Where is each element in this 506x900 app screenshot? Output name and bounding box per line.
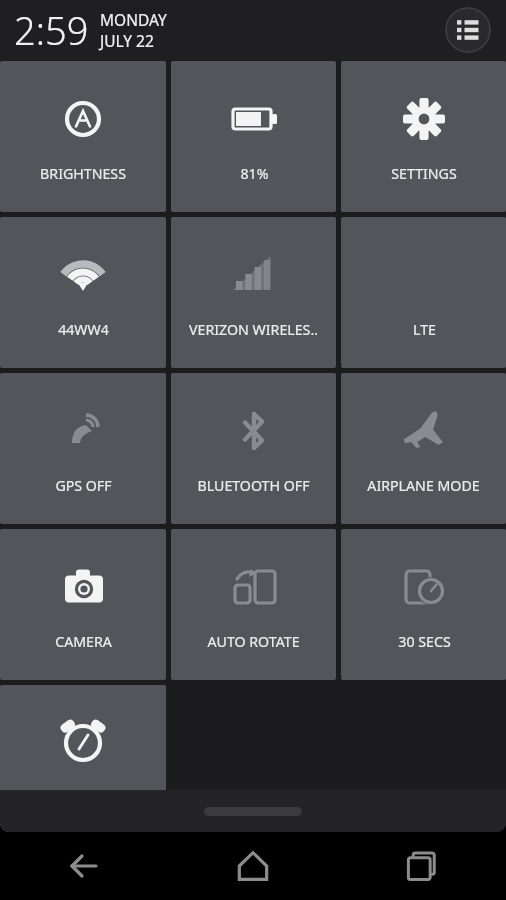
button[interactable]: 81%: [171, 61, 336, 212]
staticText: AIRPLANE MODE: [367, 476, 480, 495]
button[interactable]: VERIZON WIRELES..: [171, 217, 336, 368]
button[interactable]: LTE: [341, 217, 506, 368]
staticText: AUTO ROTATE: [207, 632, 300, 651]
button[interactable]: GPS OFF: [0, 373, 166, 524]
button[interactable]: 44WW4: [0, 217, 166, 368]
button[interactable]: 30 SECS: [341, 529, 506, 680]
staticText: GPS OFF: [55, 476, 112, 495]
staticText: SAT 10:30 AM: [38, 786, 128, 805]
button[interactable]: CAMERA: [0, 529, 166, 680]
staticText: JULY 22: [100, 30, 154, 51]
button[interactable]: Home: [168, 832, 337, 900]
staticText: BRIGHTNESS: [40, 164, 126, 183]
button[interactable]: Back: [0, 832, 168, 900]
button[interactable]: AIRPLANE MODE: [341, 373, 506, 524]
button[interactable]: SAT 10:30 AM: [0, 685, 166, 832]
button[interactable]: SETTINGS: [341, 61, 506, 212]
staticText: 44WW4: [58, 320, 109, 339]
staticText: LTE: [413, 320, 436, 339]
staticText: 2:59: [14, 4, 89, 56]
button[interactable]: Recent apps: [337, 832, 506, 900]
staticText: VERIZON WIRELES..: [189, 320, 318, 339]
staticText: 81%: [240, 164, 269, 183]
button[interactable]: Settings list: [445, 7, 491, 53]
staticText: SETTINGS: [391, 164, 457, 183]
staticText: BLUETOOTH OFF: [197, 476, 310, 495]
button[interactable]: AUTO ROTATE: [171, 529, 336, 680]
button[interactable]: BLUETOOTH OFF: [171, 373, 336, 524]
staticText: 30 SECS: [398, 632, 451, 651]
staticText: CAMERA: [55, 632, 112, 651]
button[interactable]: BRIGHTNESS: [0, 61, 166, 212]
staticText: MONDAY: [100, 9, 167, 30]
